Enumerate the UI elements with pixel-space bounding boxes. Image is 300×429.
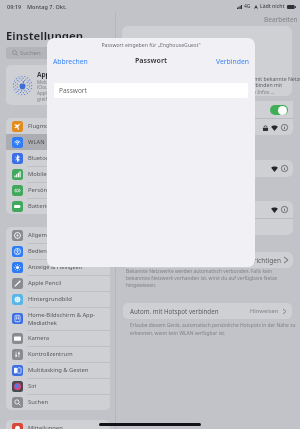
other: Signalstärke xyxy=(271,166,278,172)
other: Info xyxy=(281,165,288,172)
button[interactable]: Passwort xyxy=(54,83,248,98)
staticText: Bekannte Netzwerke werden automatisch ve… xyxy=(126,268,278,289)
staticText: Suchen xyxy=(20,49,41,57)
staticText: und weitere Infos … xyxy=(228,89,275,96)
staticText: Mobiles Netz xyxy=(28,170,64,178)
staticText: WLAN xyxy=(28,138,45,146)
staticText: Autom. mit Hotspot verbinden xyxy=(130,307,219,315)
button[interactable]: Multitasking & Gesten xyxy=(6,362,110,378)
button[interactable]: Suchen xyxy=(6,394,110,410)
staticText: Apple-Account xyxy=(37,70,85,79)
staticText: Flugmodus xyxy=(28,122,59,130)
staticText: Kamera xyxy=(28,334,50,342)
button[interactable]: Suchen xyxy=(6,47,110,59)
other: Signalstärke xyxy=(271,207,278,213)
staticText: Montag 7. Okt. xyxy=(27,3,67,10)
button[interactable] xyxy=(122,101,293,118)
button[interactable]: Signalstärke xyxy=(122,201,293,218)
staticText: Hintergrundbild xyxy=(28,295,72,303)
staticText: Apple Pencil xyxy=(28,279,62,287)
button[interactable]: Allgemein xyxy=(6,227,110,243)
button[interactable]: Gesichert xyxy=(122,119,293,135)
staticText: Home-Bildschirm & App- Mediathek xyxy=(28,311,96,326)
staticText: Suchen xyxy=(28,398,48,406)
button[interactable]: Home-Bildschirm & App- Mediathek xyxy=(6,307,110,330)
staticText: Bluetooth xyxy=(28,154,55,162)
staticText: Bedienungshilfen xyxy=(28,247,76,255)
button[interactable]: Bedienungshilfen xyxy=(6,243,110,259)
button[interactable]: Mitteilungen xyxy=(6,420,110,429)
staticText: Passwort xyxy=(59,86,87,95)
staticText: Benachrichtigen xyxy=(231,256,281,265)
staticText: 09:19 xyxy=(7,3,22,10)
staticText: Batterie xyxy=(28,202,50,210)
button[interactable]: Autom. mit Hotspot verbinden xyxy=(123,303,292,319)
other: Info xyxy=(281,206,288,213)
button[interactable] xyxy=(122,219,293,235)
button[interactable]: WLAN xyxy=(6,134,110,150)
staticText: Siri xyxy=(28,382,37,390)
button[interactable]: Flugmodus xyxy=(6,118,110,134)
staticText: Multitasking & Gesten xyxy=(28,366,89,374)
staticText: Anzeige & Helligkeit xyxy=(28,263,83,271)
staticText: in der Nähe verbinden mit xyxy=(218,81,283,88)
staticText: Passwort xyxy=(135,56,168,66)
staticText: Melde dich an, um auf iCloud, den App St… xyxy=(37,79,85,103)
staticText: Allgemein xyxy=(28,231,56,239)
button[interactable]: Bearbeiten xyxy=(264,15,298,24)
staticText: Kontrollzentrum xyxy=(28,350,73,358)
button[interactable]: Apple Pencil xyxy=(6,275,110,291)
button[interactable]: Kontrollzentrum xyxy=(6,346,110,362)
button[interactable]: Kamera xyxy=(6,330,110,346)
button[interactable]: Apple-Account xyxy=(6,65,110,105)
other: Gesichert xyxy=(263,125,268,131)
button[interactable]: Mobiles Netz xyxy=(6,166,110,182)
button[interactable] xyxy=(270,105,288,115)
staticText: 4G xyxy=(244,3,251,10)
staticText: Einstellungen xyxy=(6,28,84,43)
button[interactable]: Signalstärke xyxy=(122,160,293,177)
button[interactable]: Bluetooth xyxy=(6,150,110,166)
other: Info xyxy=(281,124,288,131)
staticText: Lädt nicht xyxy=(260,3,285,10)
button[interactable]: Batterie xyxy=(6,198,110,214)
staticText: Dieses iPad kann sich automatisch mit be… xyxy=(169,75,300,82)
button[interactable]: Persönlicher Hotspot xyxy=(6,182,110,198)
staticText: Persönlicher Hotspot xyxy=(28,186,86,194)
button[interactable]: Benachrichtigen xyxy=(122,252,293,268)
staticText: Erlaube diesem Gerät, automatisch persön… xyxy=(130,322,296,336)
button[interactable]: Abbrechen xyxy=(53,57,88,66)
staticText: Passwort eingeben für „EnghouseGuest" xyxy=(101,41,201,48)
staticText: Mitteilungen xyxy=(28,424,63,429)
button[interactable]: Anzeige & Helligkeit xyxy=(6,259,110,275)
other: Signalstärke xyxy=(271,125,278,131)
button[interactable]: Siri xyxy=(6,378,110,394)
staticText: Hinweisen xyxy=(250,307,279,315)
button[interactable]: Hintergrundbild xyxy=(6,291,110,307)
button[interactable]: Verbinden xyxy=(216,57,249,66)
